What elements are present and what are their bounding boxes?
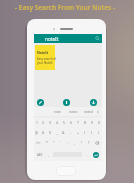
button[interactable]: 2: [40, 117, 46, 127]
staticText: &: [62, 130, 65, 135]
button[interactable]: Download note: [90, 99, 97, 106]
staticText: -: [70, 130, 72, 135]
button[interactable]: ,: [45, 148, 52, 161]
button[interactable]: ): [88, 127, 95, 137]
staticText: ABC: [37, 153, 43, 157]
staticText: 9: [91, 120, 93, 125]
staticText: ;: [74, 140, 75, 145]
button[interactable]: noted: [84, 110, 93, 114]
staticText: 0: [98, 120, 100, 125]
staticText: ": [53, 140, 55, 145]
button[interactable]: New note: [37, 99, 44, 106]
button[interactable]: $: [46, 127, 53, 137]
staticText: 1: [36, 120, 38, 125]
button[interactable]: @: [34, 127, 40, 137]
button[interactable]: &: [60, 127, 67, 137]
staticText: 7: [77, 120, 79, 125]
staticText: ': [60, 140, 61, 145]
staticText: 8: [84, 120, 86, 125]
button[interactable]: notes: [69, 110, 78, 114]
staticText: 2: [42, 120, 44, 125]
button[interactable]: 0: [95, 117, 102, 127]
button[interactable]: !: [78, 137, 85, 148]
staticText: Easy search of your NoteIt: [37, 57, 56, 65]
staticText: =\<: [36, 141, 41, 145]
button[interactable]: -: [67, 127, 74, 137]
button[interactable]: 1: [34, 117, 40, 127]
button[interactable]: =\<: [34, 137, 43, 148]
staticText: (: [84, 130, 86, 135]
button[interactable]: (: [81, 127, 88, 137]
staticText: *: [46, 140, 48, 145]
staticText: +: [77, 130, 79, 135]
button[interactable]: note: [54, 110, 61, 114]
button[interactable]: Enter: [93, 152, 99, 158]
button[interactable]: ': [57, 137, 64, 148]
button[interactable]: +: [74, 127, 81, 137]
button[interactable]: 3: [46, 117, 53, 127]
button[interactable]: Save note: [63, 99, 70, 106]
staticText: ,: [48, 152, 49, 157]
button[interactable]: ;: [71, 137, 78, 148]
button[interactable]: ?: [85, 137, 92, 148]
button[interactable]: _: [53, 127, 60, 137]
staticText: @: [35, 130, 39, 135]
button[interactable]: Home: [56, 166, 76, 176]
button[interactable]: Backspace: [92, 137, 102, 148]
staticText: NoteIt: [37, 50, 49, 55]
button[interactable]: ABC: [34, 148, 45, 161]
button[interactable]: NoteIt: [35, 45, 55, 70]
staticText: 6: [70, 120, 72, 125]
staticText: ?: [88, 140, 90, 145]
staticText: _: [56, 130, 58, 135]
staticText: 5: [63, 120, 65, 125]
button[interactable]: ": [50, 137, 57, 148]
staticText: .: [86, 152, 87, 157]
button[interactable]: 8: [81, 117, 88, 127]
button[interactable]: More options: [96, 110, 100, 114]
button[interactable]: 6: [67, 117, 74, 127]
button[interactable]: 7: [74, 117, 81, 127]
staticText: 3: [49, 120, 51, 125]
staticText: :: [67, 140, 68, 145]
button[interactable]: /: [95, 127, 102, 137]
button[interactable]: 9: [88, 117, 95, 127]
staticText: !: [81, 140, 82, 145]
staticText: /: [98, 130, 100, 135]
button[interactable]: 5: [60, 117, 67, 127]
button[interactable]: *: [43, 137, 50, 148]
staticText: ): [91, 130, 93, 135]
staticText: - Easy Search From Your Notes -: [15, 3, 115, 12]
button[interactable]: noteIt: [34, 34, 102, 43]
staticText: 4: [56, 120, 58, 125]
button[interactable]: 4: [53, 117, 60, 127]
button[interactable]: Search: [95, 36, 100, 41]
staticText: noteIt: [45, 36, 59, 42]
button[interactable]: #: [40, 127, 46, 137]
staticText: #: [42, 130, 45, 135]
staticText: $: [49, 130, 51, 135]
